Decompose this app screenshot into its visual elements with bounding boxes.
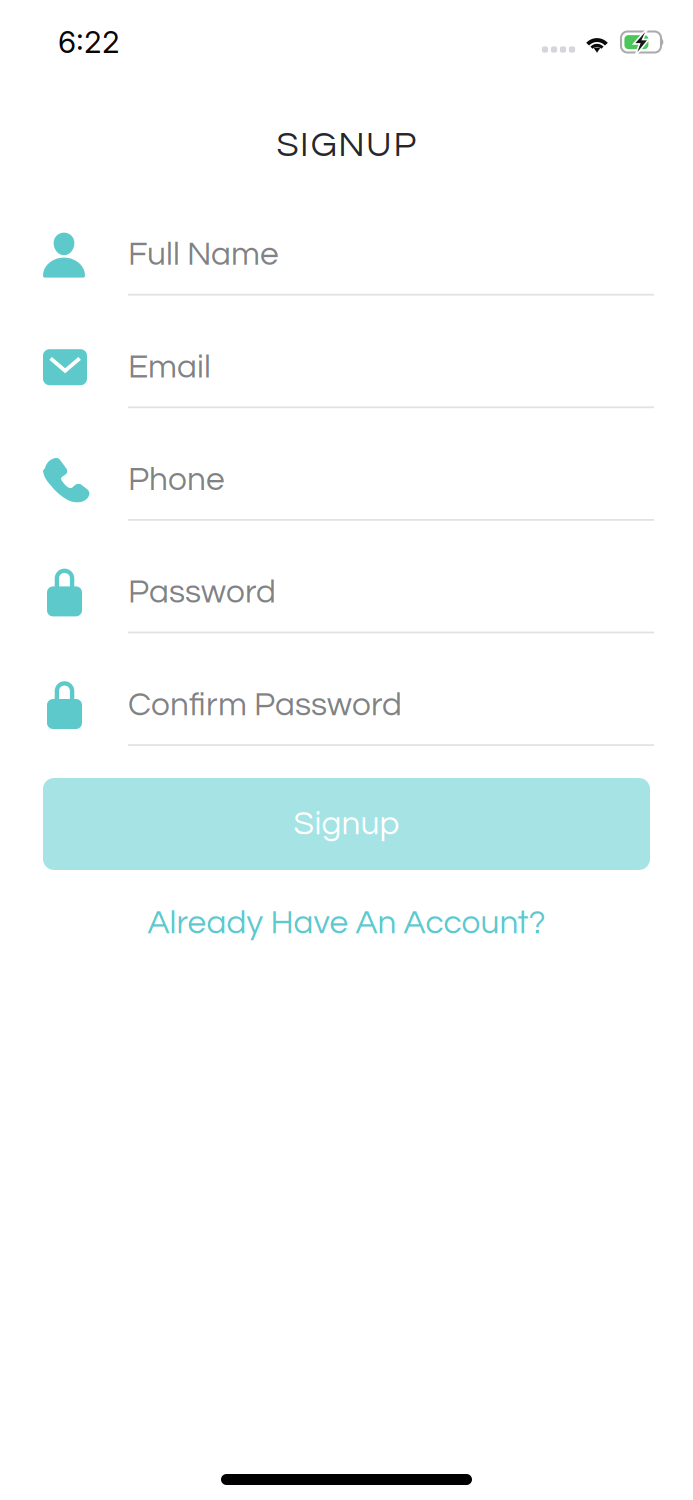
button[interactable]: Email xyxy=(43,296,654,408)
button[interactable]: Already Have An Account? xyxy=(0,898,693,948)
staticText: Phone xyxy=(128,463,225,497)
staticText: Signup xyxy=(293,807,399,841)
button[interactable]: Full Name xyxy=(43,183,654,296)
staticText: SIGNUP xyxy=(276,126,416,164)
staticText: Email xyxy=(128,350,211,384)
staticText: Password xyxy=(128,575,276,610)
staticText: Already Have An Account? xyxy=(147,906,545,940)
button[interactable]: Confirm Password xyxy=(43,633,654,746)
staticText: Full Name xyxy=(128,237,279,272)
button[interactable]: Password xyxy=(43,521,654,633)
button[interactable]: Signup xyxy=(43,778,650,870)
staticText: Confirm Password xyxy=(128,688,402,722)
button[interactable]: Phone xyxy=(43,408,654,521)
staticText: 6:22 xyxy=(58,24,120,60)
